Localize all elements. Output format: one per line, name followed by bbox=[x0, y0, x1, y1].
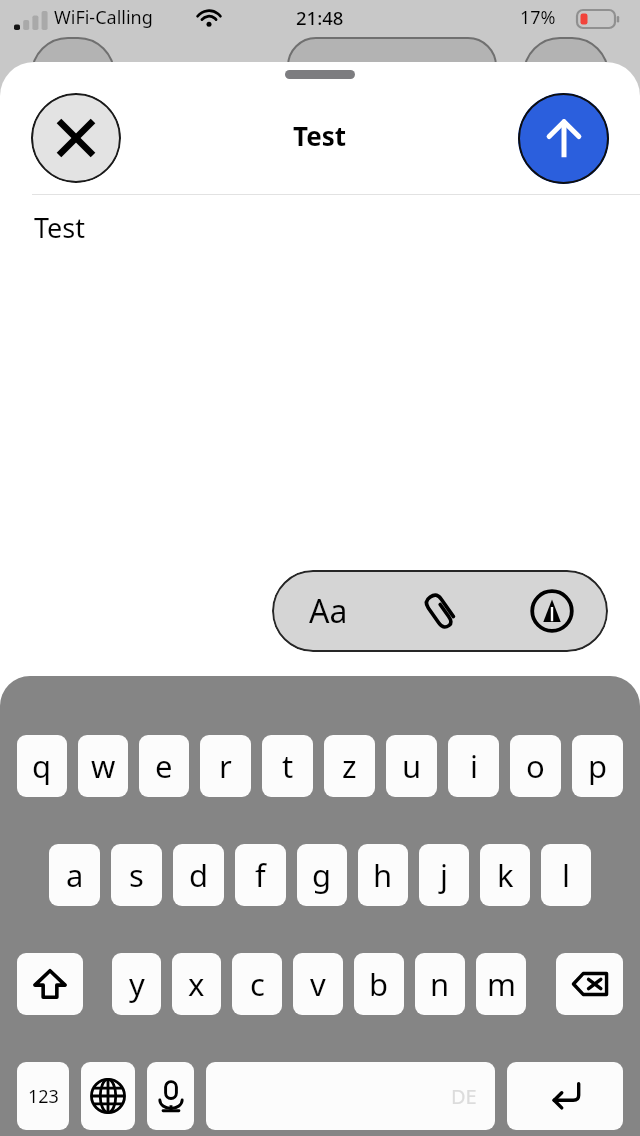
staticText: DE bbox=[451, 1083, 477, 1110]
staticText: o bbox=[526, 745, 545, 787]
button[interactable]: 123 bbox=[17, 1062, 69, 1130]
button[interactable]: t bbox=[262, 735, 313, 797]
staticText: n bbox=[430, 963, 450, 1005]
staticText: w bbox=[91, 745, 116, 787]
button[interactable]: Close bbox=[31, 93, 121, 183]
button[interactable]: Shift bbox=[17, 953, 83, 1015]
staticText: v bbox=[310, 963, 326, 1005]
button[interactable]: q bbox=[17, 735, 67, 797]
button[interactable]: a bbox=[49, 844, 100, 906]
staticText: q bbox=[32, 745, 52, 787]
button[interactable]: g bbox=[297, 844, 347, 906]
button[interactable]: u bbox=[386, 735, 437, 797]
button[interactable]: r bbox=[200, 735, 251, 797]
staticText: WiFi-Calling bbox=[54, 5, 153, 30]
staticText: a bbox=[66, 854, 84, 896]
staticText: u bbox=[402, 745, 422, 787]
button[interactable]: p bbox=[572, 735, 623, 797]
button[interactable]: Backspace bbox=[556, 953, 623, 1015]
button[interactable]: Dictate bbox=[147, 1062, 194, 1130]
staticText: Aa bbox=[309, 589, 348, 633]
button[interactable]: m bbox=[476, 953, 526, 1015]
staticText: z bbox=[342, 745, 357, 787]
button[interactable]: x bbox=[172, 953, 221, 1015]
button[interactable]: z bbox=[324, 735, 375, 797]
button[interactable]: f bbox=[235, 844, 286, 906]
staticText: g bbox=[312, 854, 332, 896]
button[interactable]: b bbox=[354, 953, 404, 1015]
button[interactable]: Markup bbox=[496, 570, 608, 652]
button[interactable]: d bbox=[173, 844, 224, 906]
staticText: 21:48 bbox=[296, 5, 344, 30]
staticText: d bbox=[189, 854, 209, 896]
button[interactable]: y bbox=[112, 953, 161, 1015]
staticText: e bbox=[155, 745, 173, 787]
staticText: 17% bbox=[520, 5, 556, 30]
staticText: l bbox=[562, 854, 570, 896]
button[interactable]: j bbox=[419, 844, 469, 906]
button[interactable]: Aa bbox=[272, 570, 384, 652]
button[interactable]: h bbox=[358, 844, 408, 906]
staticText: p bbox=[588, 745, 608, 787]
staticText: Test bbox=[293, 118, 347, 153]
button[interactable]: l bbox=[541, 844, 591, 906]
staticText: t bbox=[282, 745, 294, 787]
button[interactable]: n bbox=[415, 953, 465, 1015]
button[interactable]: Return bbox=[507, 1062, 623, 1130]
staticText: i bbox=[470, 745, 478, 787]
button[interactable]: e bbox=[139, 735, 189, 797]
staticText: k bbox=[497, 854, 514, 896]
staticText: x bbox=[188, 963, 205, 1005]
button[interactable]: v bbox=[293, 953, 343, 1015]
staticText: h bbox=[373, 854, 393, 896]
button[interactable]: Attach bbox=[384, 570, 496, 652]
button[interactable]: Switch keyboard bbox=[81, 1062, 135, 1130]
staticText: r bbox=[219, 745, 232, 787]
staticText: c bbox=[250, 963, 265, 1005]
staticText: Test bbox=[34, 209, 86, 246]
button[interactable]: i bbox=[448, 735, 499, 797]
staticText: y bbox=[129, 963, 145, 1005]
button[interactable]: o bbox=[510, 735, 561, 797]
button[interactable]: s bbox=[111, 844, 162, 906]
button[interactable]: c bbox=[232, 953, 282, 1015]
staticText: j bbox=[440, 854, 448, 896]
staticText: s bbox=[129, 854, 144, 896]
staticText: f bbox=[255, 854, 266, 896]
button[interactable]: k bbox=[480, 844, 530, 906]
staticText: m bbox=[487, 963, 516, 1005]
button[interactable]: w bbox=[78, 735, 128, 797]
staticText: 123 bbox=[28, 1084, 59, 1109]
button[interactable]: Send bbox=[518, 93, 609, 184]
staticText: b bbox=[369, 963, 389, 1005]
button[interactable]: DE bbox=[206, 1062, 495, 1130]
